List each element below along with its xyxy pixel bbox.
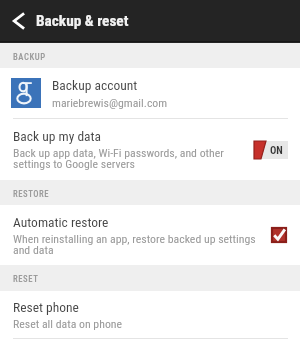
- staticText: ON: [270, 144, 283, 156]
- staticText: Backup & reset: [36, 12, 129, 30]
- button[interactable]: Backup account: [0, 68, 300, 118]
- button[interactable]: Back up my data, on: [254, 141, 288, 159]
- staticText: Backup account: [52, 77, 138, 93]
- staticText: When reinstalling an app, restore backed…: [13, 232, 262, 257]
- staticText: RESET: [13, 274, 39, 284]
- button[interactable]: Reset phone: [0, 291, 300, 338]
- button[interactable]: Back: [2, 5, 34, 37]
- staticText: Back up app data, Wi-Fi passwords, and o…: [13, 146, 244, 171]
- button[interactable]: Automatic restore, checked: [272, 228, 286, 242]
- staticText: Reset all data on phone: [13, 317, 123, 331]
- button[interactable]: Automatic restore: [0, 205, 300, 265]
- staticText: Automatic restore: [13, 214, 109, 230]
- staticText: Reset phone: [13, 299, 79, 315]
- staticText: Back up my data: [13, 128, 102, 144]
- staticText: mariebrewis@gmail.com: [52, 96, 168, 110]
- button[interactable]: Back up my data: [0, 119, 300, 180]
- staticText: BACKUP: [13, 52, 46, 62]
- staticText: RESTORE: [13, 189, 50, 199]
